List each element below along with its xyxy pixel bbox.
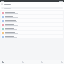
button[interactable] — [1, 19, 63, 22]
button[interactable] — [1, 27, 63, 30]
button[interactable] — [1, 7, 63, 9]
button[interactable]: Profile — [60, 60, 63, 64]
button[interactable]: Search — [21, 60, 24, 64]
button[interactable]: Menu — [1, 3, 3, 5]
button[interactable] — [1, 15, 63, 18]
button[interactable]: Library — [40, 60, 43, 64]
button[interactable] — [1, 35, 63, 38]
button[interactable] — [1, 23, 63, 26]
button[interactable] — [1, 11, 63, 14]
button[interactable]: Home — [1, 60, 4, 64]
button[interactable] — [1, 31, 63, 34]
